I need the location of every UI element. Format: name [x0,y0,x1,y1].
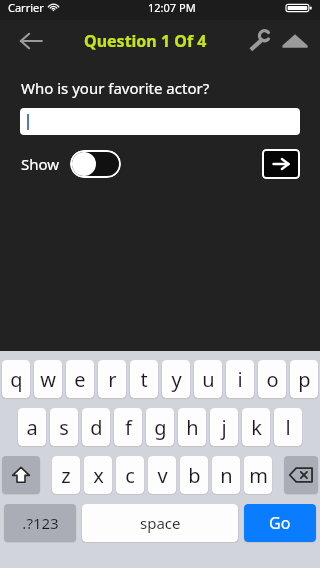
button[interactable]: m [244,456,272,494]
button[interactable]: Back [14,24,48,58]
staticText: v [157,462,168,489]
button[interactable]: g [146,408,174,446]
staticText: f [125,414,132,441]
button[interactable]: h [178,408,206,446]
staticText: o [266,366,279,393]
staticText: l [285,414,291,441]
staticText: b [188,462,201,489]
staticText: e [74,366,86,393]
staticText: s [59,414,69,441]
button[interactable]: y [162,360,190,398]
button[interactable]: l [274,408,302,446]
button[interactable]: w [34,360,62,398]
button[interactable]: x [84,456,112,494]
staticText: Question 1 Of 4 [84,30,207,52]
button[interactable]: j [210,408,238,446]
staticText: t [140,366,148,393]
staticText: Go [269,512,291,534]
staticText: i [237,366,243,393]
staticText: n [220,462,233,489]
staticText: p [298,366,311,393]
staticText: h [186,414,199,441]
staticText: m [249,462,268,489]
staticText: Who is your favorite actor? [21,78,210,98]
staticText: u [202,366,215,393]
staticText: space [140,513,181,533]
staticText: r [108,366,117,393]
staticText: q [10,366,23,393]
staticText: Carrier [8,0,44,15]
staticText: g [154,414,167,441]
button[interactable]: Shift [2,456,40,494]
button[interactable]: b [180,456,208,494]
staticText: z [61,462,71,489]
button[interactable]: q [2,360,30,398]
staticText: y [171,366,182,393]
button[interactable]: f [114,408,142,446]
button[interactable]: p [290,360,318,398]
button[interactable]: Backspace [284,456,318,494]
staticText: j [221,414,227,441]
staticText: a [26,414,38,441]
button[interactable]: Go [244,504,316,542]
button[interactable]: v [148,456,176,494]
staticText: w [40,366,56,393]
staticText: .?123 [22,513,59,533]
button[interactable]: space [82,504,238,542]
button[interactable]: u [194,360,222,398]
staticText: k [251,414,262,441]
button[interactable]: k [242,408,270,446]
button[interactable]: Settings [242,24,276,58]
button[interactable]: d [82,408,110,446]
button[interactable]: o [258,360,286,398]
button[interactable]: Home [276,22,314,60]
staticText: Show [21,154,60,174]
button[interactable]: Show toggle [70,150,121,178]
button[interactable]: n [212,456,240,494]
button[interactable]: r [98,360,126,398]
button[interactable]: Next [262,149,300,179]
button[interactable] [20,108,300,135]
button[interactable]: e [66,360,94,398]
button[interactable]: i [226,360,254,398]
button[interactable]: t [130,360,158,398]
staticText: c [125,462,135,489]
staticText: 12:07 PM [148,0,196,15]
button[interactable]: s [50,408,78,446]
button[interactable]: c [116,456,144,494]
button[interactable]: .?123 [4,504,76,542]
staticText: d [90,414,103,441]
button[interactable]: z [52,456,80,494]
button[interactable]: a [18,408,46,446]
staticText: x [93,462,104,489]
